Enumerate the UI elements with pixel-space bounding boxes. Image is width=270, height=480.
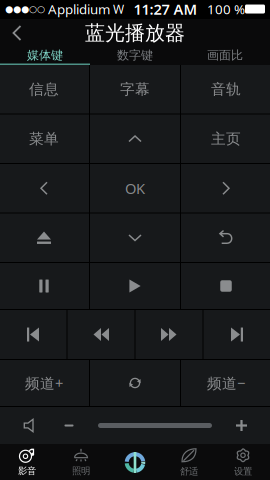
button[interactable]: Back [0, 19, 34, 47]
staticText: 照明 [72, 465, 90, 477]
button[interactable] [90, 263, 180, 309]
button[interactable]: 音轨 [181, 65, 270, 113]
staticText: 舒适 [180, 466, 198, 477]
button[interactable]: 频道+ [0, 360, 89, 406]
button[interactable] [181, 213, 270, 262]
staticText: 频道− [207, 373, 245, 393]
button[interactable]: 画面比 [180, 47, 270, 65]
button[interactable]: 舒适 [162, 444, 216, 480]
button[interactable]: 字幕 [90, 65, 180, 113]
staticText: OK [125, 178, 145, 198]
staticText: 11:27 AM [133, 0, 197, 19]
staticText: W [113, 1, 124, 17]
button[interactable]: OK [90, 164, 180, 212]
staticText: 画面比 [207, 48, 243, 63]
button[interactable]: Home [108, 444, 162, 480]
staticText: 媒体键 [27, 48, 63, 63]
button[interactable] [90, 360, 180, 406]
button[interactable]: 媒体键 [0, 47, 90, 65]
button[interactable]: 频道− [181, 360, 270, 406]
button[interactable]: 数字键 [90, 47, 180, 65]
button[interactable] [135, 310, 202, 359]
button[interactable] [90, 213, 180, 262]
staticText: 信息 [29, 80, 59, 98]
staticText: 蓝光播放器 [85, 21, 185, 45]
button[interactable]: Volume down [58, 407, 80, 444]
staticText: 设置 [234, 466, 252, 477]
button[interactable] [90, 114, 180, 163]
button[interactable] [181, 164, 270, 212]
button[interactable]: 影音 [0, 444, 54, 480]
button[interactable]: 信息 [0, 65, 89, 113]
staticText: 影音 [18, 465, 36, 477]
button[interactable] [181, 263, 270, 309]
staticText: 菜单 [29, 130, 59, 148]
button[interactable]: 菜单 [0, 114, 89, 163]
button[interactable]: 设置 [216, 444, 270, 480]
button[interactable]: 主页 [181, 114, 270, 163]
button[interactable] [67, 310, 134, 359]
button[interactable] [203, 310, 270, 359]
staticText: Applidium [45, 0, 113, 18]
button[interactable]: 照明 [54, 444, 108, 480]
button[interactable] [0, 164, 89, 212]
button[interactable]: Mute [0, 407, 58, 444]
staticText: 字幕 [120, 80, 150, 98]
staticText: 主页 [211, 130, 241, 148]
button[interactable]: Volume up [213, 407, 270, 444]
staticText: 100 % [207, 0, 245, 18]
button[interactable] [0, 310, 66, 359]
button[interactable] [0, 263, 89, 309]
staticText: 音轨 [211, 80, 241, 98]
staticText: ●●●○○ [5, 4, 45, 14]
staticText: 频道+ [25, 373, 63, 393]
button[interactable] [0, 213, 89, 262]
staticText: 数字键 [117, 48, 153, 63]
